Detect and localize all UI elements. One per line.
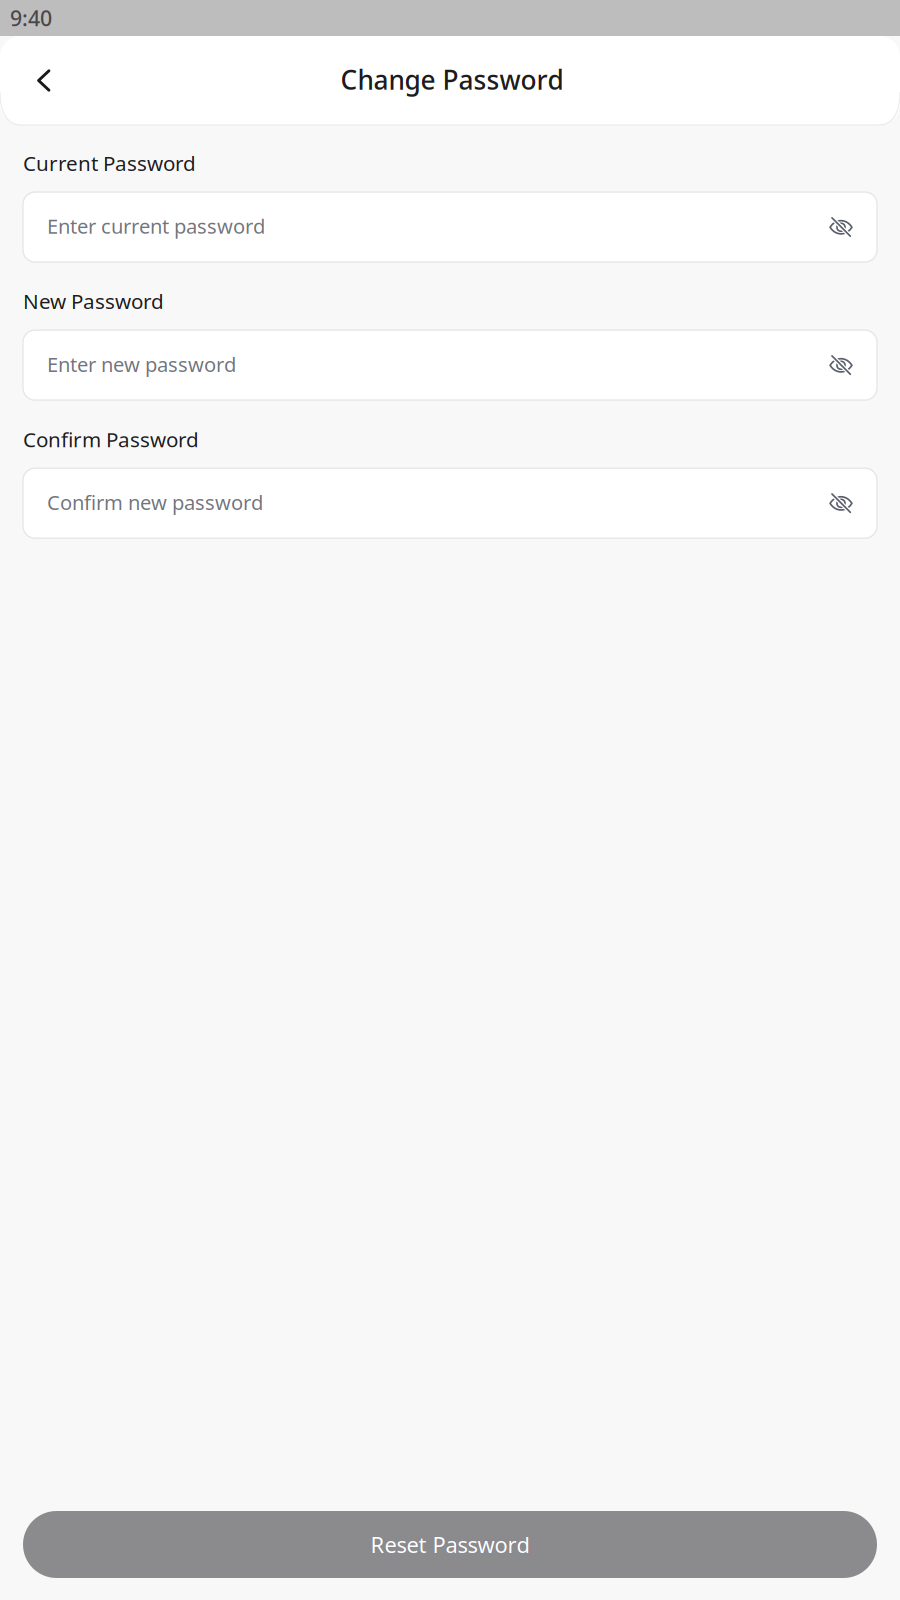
staticText: Confirm Password <box>23 425 199 453</box>
button[interactable]: Current Password <box>23 192 877 262</box>
button[interactable]: Show New Password <box>817 353 853 377</box>
staticText: Reset Password <box>370 1530 529 1559</box>
staticText: Confirm new password <box>47 488 263 516</box>
staticText: Current Password <box>23 149 196 177</box>
button[interactable]: Reset Password <box>23 1511 877 1578</box>
button[interactable]: Show Current Password <box>817 215 853 239</box>
button[interactable]: Confirm Password <box>23 468 877 538</box>
staticText: 9:40 <box>10 3 52 33</box>
staticText: Enter current password <box>47 212 265 240</box>
button[interactable]: New Password <box>23 330 877 400</box>
staticText: Enter new password <box>47 350 236 378</box>
button[interactable]: Show Confirm Password <box>817 491 853 515</box>
button[interactable]: Back <box>0 55 70 106</box>
staticText: Change Password <box>340 62 563 97</box>
staticText: New Password <box>23 287 164 315</box>
